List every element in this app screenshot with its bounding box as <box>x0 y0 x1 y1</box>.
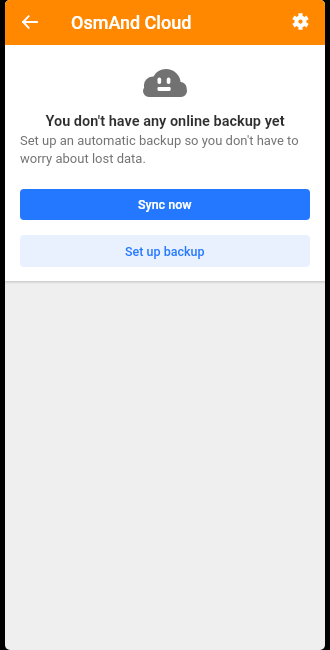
button[interactable]: Sync now <box>20 189 310 220</box>
staticText: OsmAnd Cloud <box>71 12 192 33</box>
button[interactable]: Back <box>10 2 50 42</box>
button[interactable]: Settings <box>280 1 320 41</box>
staticText: You don't have any online backup yet <box>5 113 325 130</box>
staticText: Sync now <box>138 197 192 212</box>
staticText: Set up backup <box>125 244 205 259</box>
button[interactable]: Set up backup <box>20 235 310 267</box>
staticText: Set up an automatic backup so you don't … <box>20 133 310 166</box>
